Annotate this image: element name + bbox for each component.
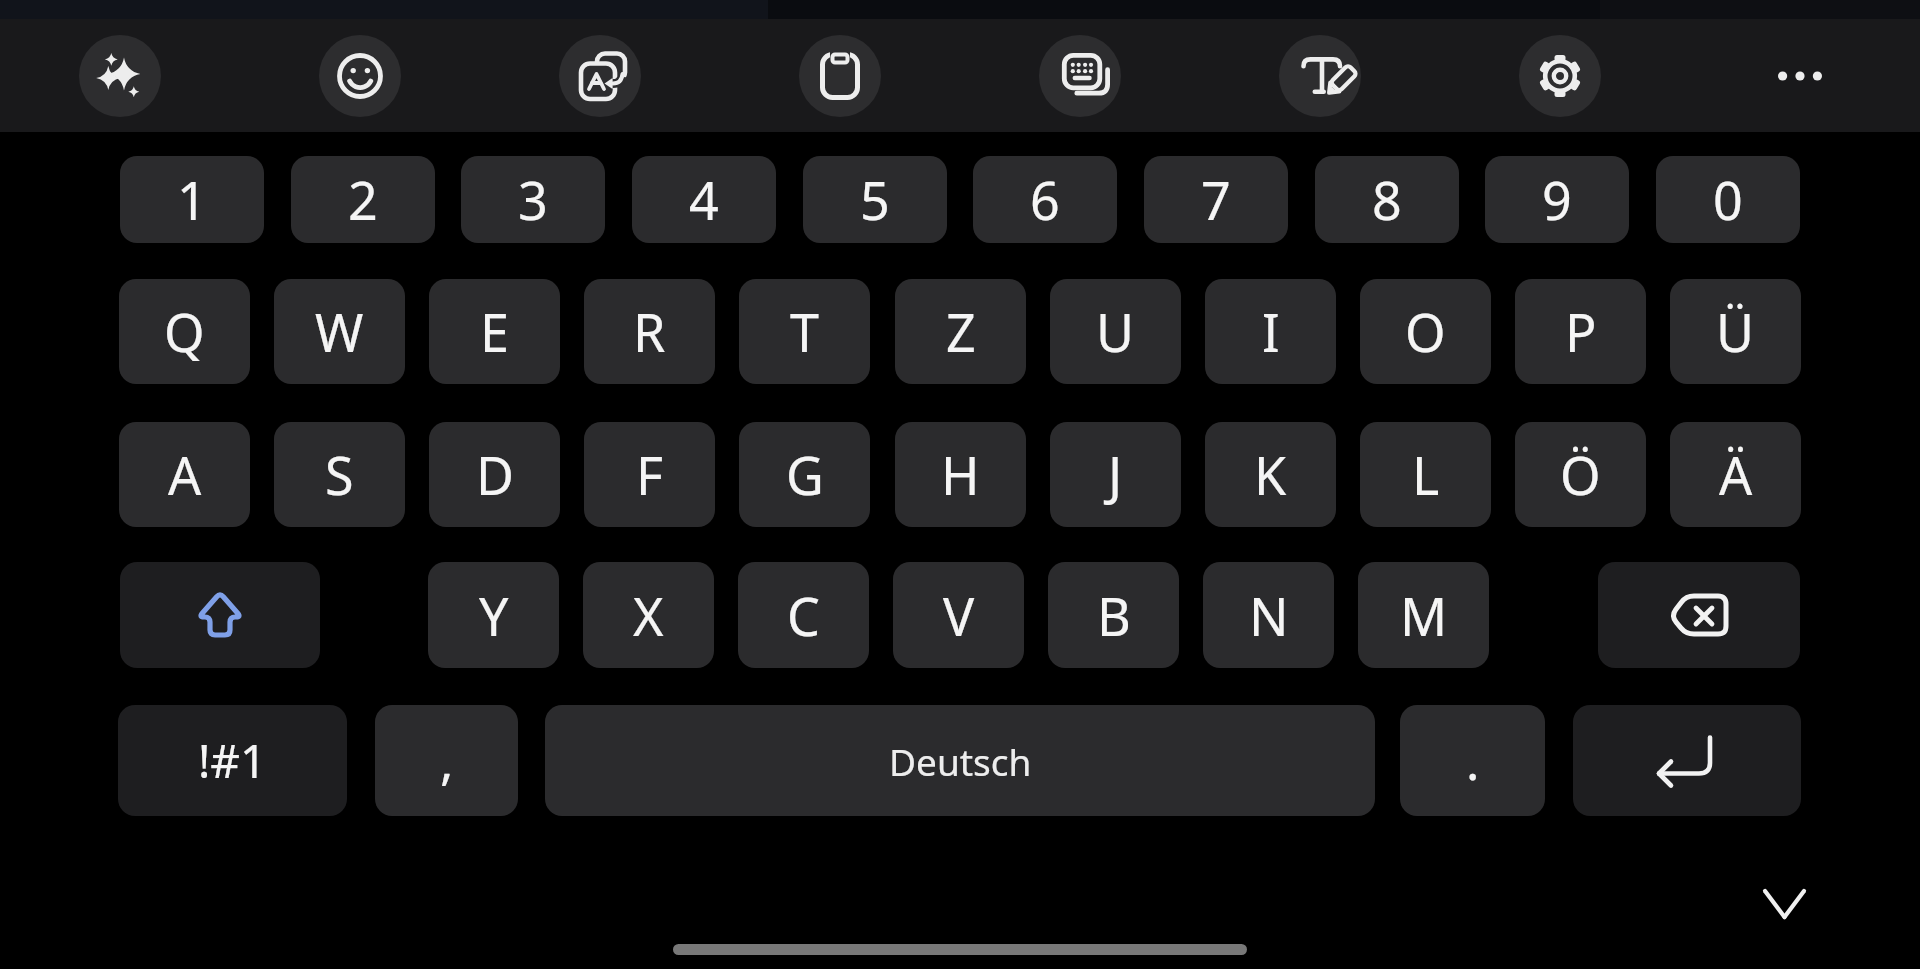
staticText: S	[325, 439, 354, 510]
button[interactable]: 1	[120, 156, 264, 243]
staticText: G	[786, 439, 824, 510]
button[interactable]: 4	[632, 156, 776, 243]
button[interactable]: !#1	[118, 705, 347, 816]
button[interactable]: 9	[1485, 156, 1629, 243]
staticText: A	[168, 439, 202, 510]
staticText: B	[1097, 580, 1131, 651]
staticText: U	[1096, 296, 1135, 367]
button[interactable]: 8	[1315, 156, 1459, 243]
staticText: W	[315, 296, 364, 367]
staticText: C	[787, 580, 820, 651]
button[interactable]: B	[1048, 562, 1179, 668]
button[interactable]	[1759, 35, 1841, 117]
staticText: R	[633, 296, 666, 367]
button[interactable]: L	[1360, 422, 1491, 527]
staticText: J	[1108, 439, 1123, 510]
staticText: L	[1412, 439, 1440, 510]
button[interactable]: T	[739, 279, 870, 384]
staticText: Y	[479, 580, 509, 651]
staticText: D	[476, 439, 514, 510]
button[interactable]: 3	[461, 156, 605, 243]
staticText: N	[1249, 580, 1289, 651]
staticText: 0	[1713, 164, 1743, 235]
button[interactable]: ,	[375, 705, 518, 816]
button[interactable]	[120, 562, 320, 668]
button[interactable]: 2	[291, 156, 435, 243]
button[interactable]: E	[429, 279, 560, 384]
button[interactable]: 0	[1656, 156, 1800, 243]
button[interactable]: Q	[119, 279, 250, 384]
button[interactable]	[79, 35, 161, 117]
button[interactable]	[1573, 705, 1801, 816]
staticText: Ü	[1716, 296, 1755, 367]
staticText: 8	[1372, 164, 1402, 235]
button[interactable]: J	[1050, 422, 1181, 527]
button[interactable]: Z	[895, 279, 1026, 384]
button[interactable]: 7	[1144, 156, 1288, 243]
button[interactable]: 6	[973, 156, 1117, 243]
button[interactable]: .	[1400, 705, 1545, 816]
button[interactable]	[1750, 880, 1820, 930]
button[interactable]: O	[1360, 279, 1491, 384]
button[interactable]	[1598, 562, 1800, 668]
staticText: 5	[860, 164, 890, 235]
button[interactable]: A	[119, 422, 250, 527]
staticText: 6	[1030, 164, 1060, 235]
staticText: M	[1400, 580, 1448, 651]
button[interactable]: R	[584, 279, 715, 384]
staticText: .	[1466, 727, 1480, 795]
button[interactable]: N	[1203, 562, 1334, 668]
staticText: O	[1405, 296, 1446, 367]
button[interactable]: F	[584, 422, 715, 527]
staticText: 7	[1201, 164, 1231, 235]
staticText: 3	[518, 164, 548, 235]
button[interactable]: P	[1515, 279, 1646, 384]
button[interactable]	[559, 35, 641, 117]
button[interactable]	[319, 35, 401, 117]
staticText: 1	[177, 164, 207, 235]
button[interactable]	[799, 35, 881, 117]
staticText: 4	[689, 164, 719, 235]
button[interactable]: 5	[803, 156, 947, 243]
button[interactable]: V	[893, 562, 1024, 668]
button[interactable]: Y	[428, 562, 559, 668]
button[interactable]: G	[739, 422, 870, 527]
button[interactable]: Deutsch	[545, 705, 1375, 816]
button[interactable]	[1039, 35, 1121, 117]
staticText: Ö	[1560, 439, 1601, 510]
staticText: F	[636, 439, 663, 510]
staticText: I	[1262, 296, 1280, 367]
staticText: V	[943, 580, 975, 651]
button[interactable]: H	[895, 422, 1026, 527]
button[interactable]: Ü	[1670, 279, 1801, 384]
staticText: Ä	[1719, 439, 1753, 510]
staticText: 9	[1542, 164, 1572, 235]
button[interactable]: Ä	[1670, 422, 1801, 527]
staticText: E	[480, 296, 509, 367]
button[interactable]: I	[1205, 279, 1336, 384]
button[interactable]: K	[1205, 422, 1336, 527]
button[interactable]: U	[1050, 279, 1181, 384]
staticText: T	[790, 296, 819, 367]
staticText: ,	[440, 727, 454, 795]
staticText: 2	[348, 164, 378, 235]
staticText: P	[1565, 296, 1597, 367]
button[interactable]	[1279, 35, 1361, 117]
button[interactable]	[1519, 35, 1601, 117]
button[interactable]: C	[738, 562, 869, 668]
staticText: H	[941, 439, 980, 510]
staticText: Deutsch	[889, 736, 1032, 786]
button[interactable]: Ö	[1515, 422, 1646, 527]
staticText: !#1	[198, 729, 267, 792]
button[interactable]: W	[274, 279, 405, 384]
button[interactable]: S	[274, 422, 405, 527]
staticText: Q	[164, 296, 205, 367]
staticText: X	[633, 580, 664, 651]
staticText: Z	[946, 296, 976, 367]
button[interactable]: X	[583, 562, 714, 668]
staticText: K	[1254, 439, 1287, 510]
button[interactable]: M	[1358, 562, 1489, 668]
button[interactable]: D	[429, 422, 560, 527]
